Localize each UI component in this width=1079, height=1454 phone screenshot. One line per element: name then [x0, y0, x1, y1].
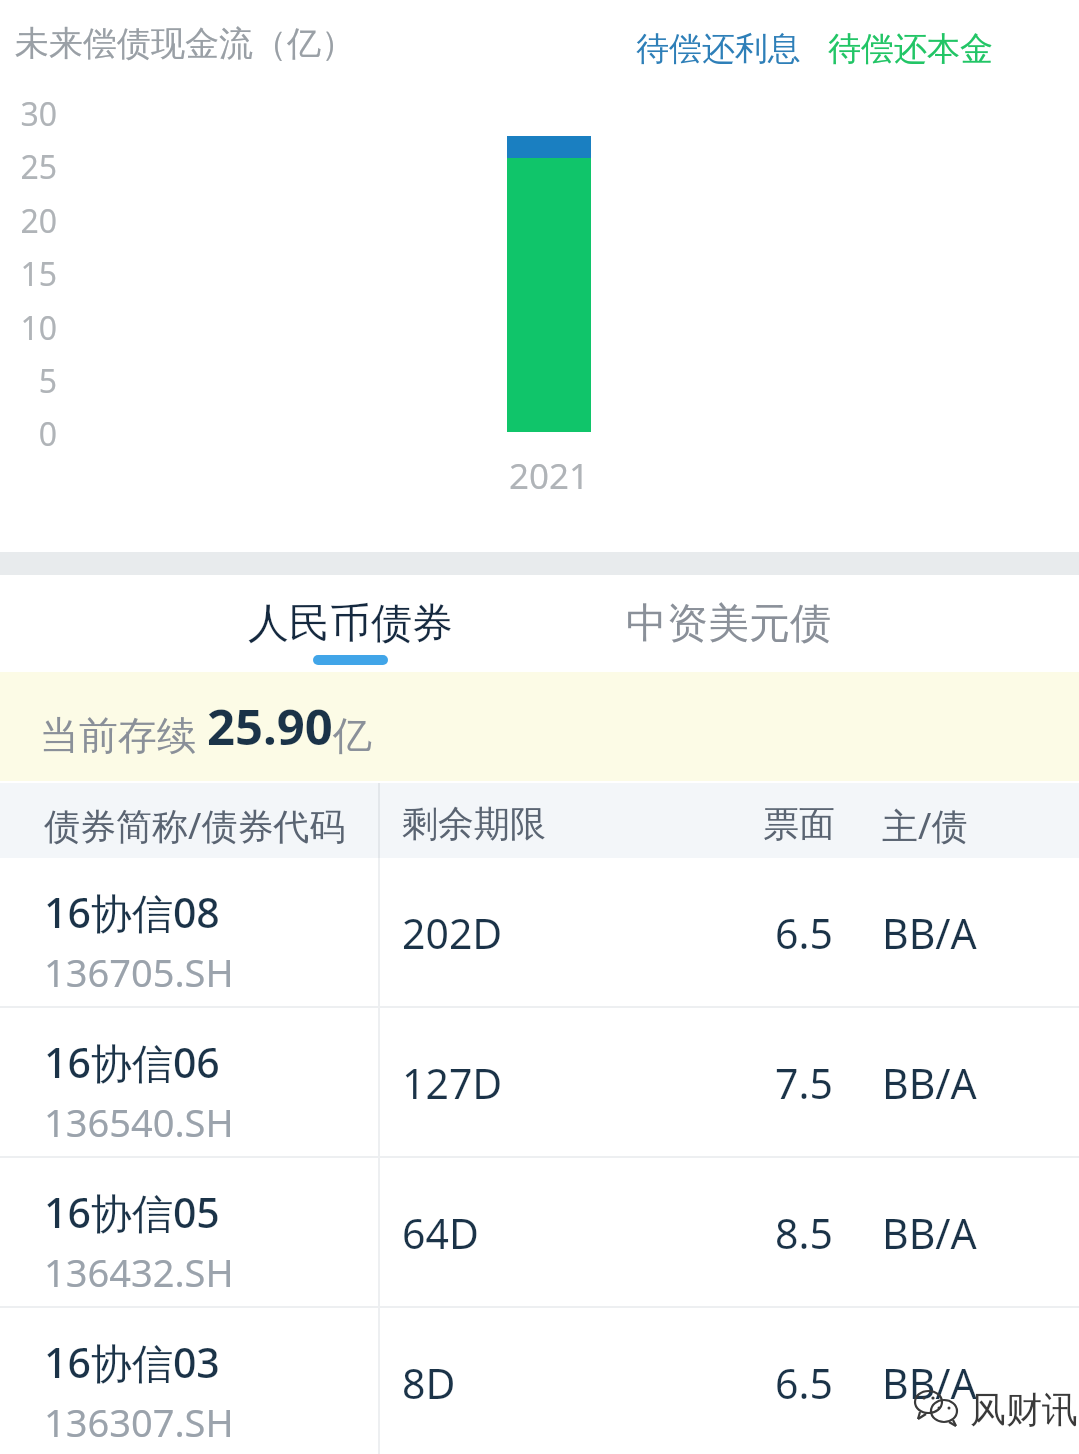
- staticText: 6.5: [775, 1355, 833, 1411]
- staticText: 136705.SH: [44, 946, 234, 998]
- staticText: BB/A: [882, 1055, 977, 1111]
- staticText: 亿: [333, 711, 372, 760]
- staticText: 136432.SH: [44, 1246, 234, 1298]
- button[interactable]: [507, 136, 591, 432]
- staticText: 202D: [402, 905, 503, 961]
- button[interactable]: 16协信08: [0, 858, 1079, 1008]
- staticText: 8D: [402, 1355, 456, 1411]
- staticText: 0: [38, 412, 57, 456]
- staticText: 136540.SH: [44, 1096, 234, 1148]
- button[interactable]: 16协信05: [0, 1158, 1079, 1308]
- staticText: 16协信03: [44, 1334, 220, 1390]
- staticText: 待偿还本金: [828, 28, 993, 70]
- staticText: 20: [20, 199, 57, 243]
- staticText: BB/A: [882, 1355, 977, 1411]
- staticText: BB/A: [882, 905, 977, 961]
- staticText: 风财讯: [970, 1387, 1078, 1432]
- button[interactable]: 待偿还利息: [636, 28, 801, 70]
- staticText: 未来偿债现金流（亿）: [15, 22, 355, 65]
- staticText: 当前存续: [40, 707, 207, 760]
- button[interactable]: 16协信03: [0, 1308, 1079, 1454]
- staticText: 2021: [509, 452, 590, 500]
- staticText: 136307.SH: [44, 1396, 234, 1448]
- staticText: 5: [38, 359, 57, 403]
- staticText: 30: [20, 92, 57, 136]
- staticText: 主/债: [882, 801, 968, 850]
- other: 风财讯 WeChat: [915, 1385, 1055, 1435]
- staticText: 16协信05: [44, 1184, 220, 1240]
- staticText: 7.5: [775, 1055, 833, 1111]
- staticText: 25.90: [207, 693, 333, 760]
- staticText: 127D: [402, 1055, 503, 1111]
- staticText: 债券简称/债券代码: [44, 801, 346, 850]
- staticText: 64D: [402, 1205, 479, 1261]
- button[interactable]: 16协信06: [0, 1008, 1079, 1158]
- staticText: 25: [20, 145, 57, 189]
- button[interactable]: 待偿还本金: [828, 28, 993, 70]
- staticText: 16协信06: [44, 1034, 220, 1090]
- staticText: 票面: [763, 801, 835, 846]
- staticText: 16协信08: [44, 884, 220, 940]
- staticText: 剩余期限: [402, 801, 546, 846]
- staticText: 8.5: [775, 1205, 833, 1261]
- staticText: 6.5: [775, 905, 833, 961]
- staticText: 中资美元债: [626, 598, 831, 650]
- button[interactable]: 中资美元债: [610, 575, 847, 672]
- button[interactable]: 人民币债券: [232, 575, 469, 672]
- staticText: BB/A: [882, 1205, 977, 1261]
- staticText: 人民币债券: [248, 598, 453, 650]
- staticText: 10: [20, 306, 57, 350]
- staticText: 待偿还利息: [636, 28, 801, 70]
- staticText: 15: [20, 252, 57, 296]
